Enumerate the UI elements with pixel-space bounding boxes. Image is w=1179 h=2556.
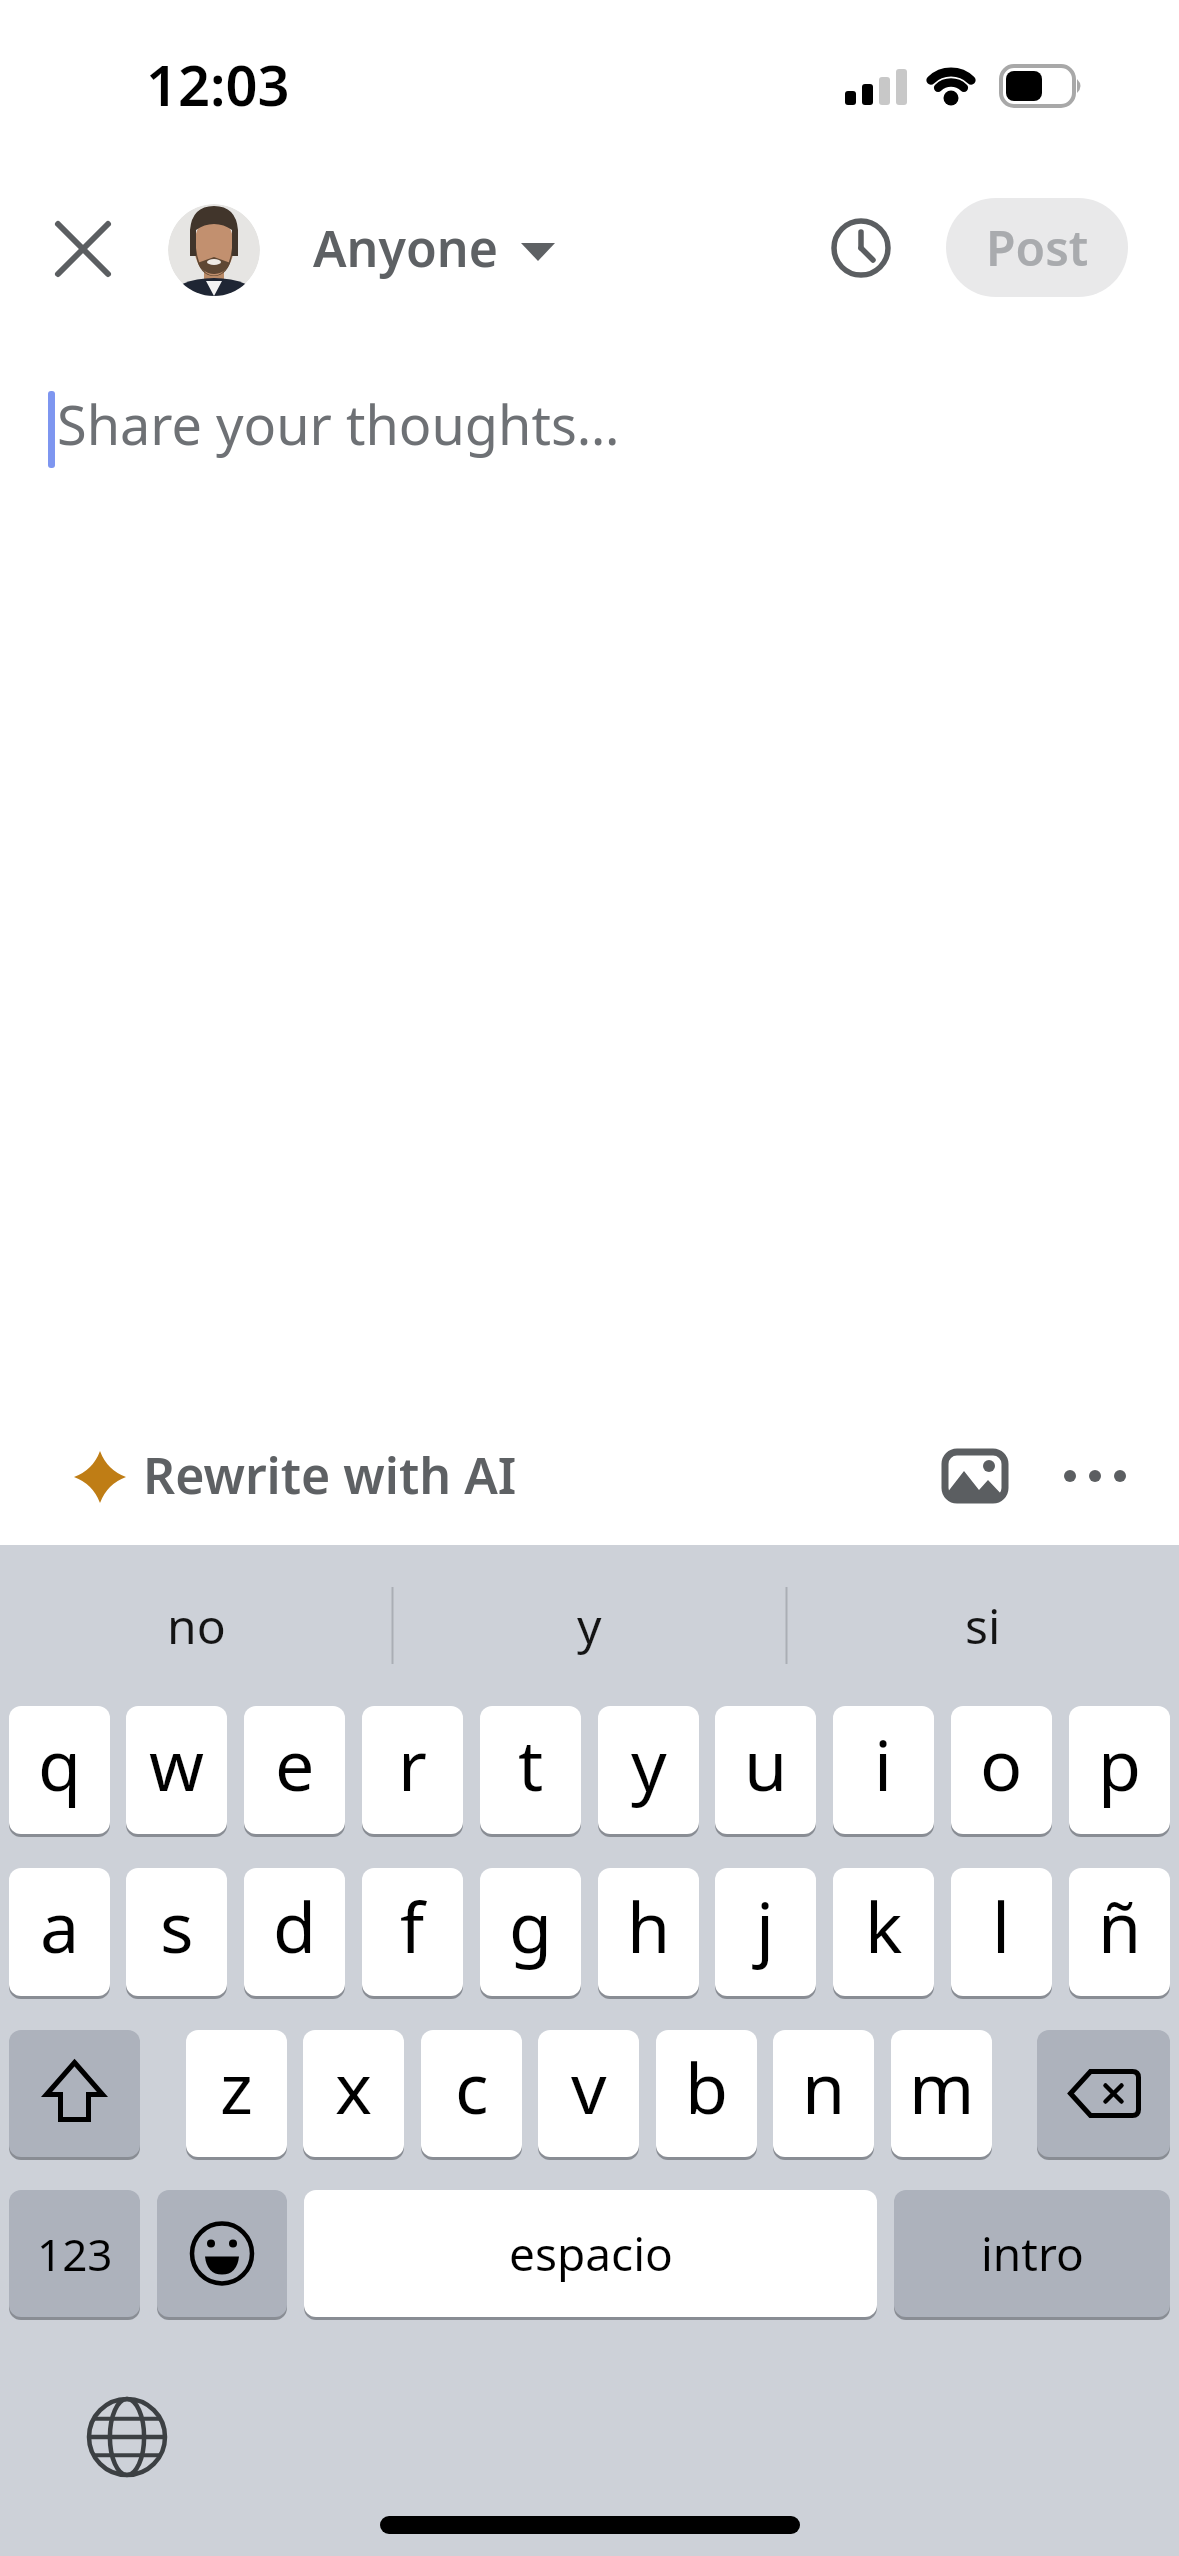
staticText: 123: [37, 2224, 113, 2284]
staticText: k: [865, 1878, 903, 1973]
staticText: t: [518, 1716, 544, 1811]
staticText: u: [744, 1716, 788, 1811]
button[interactable]: f: [362, 1868, 463, 1996]
staticText: w: [149, 1716, 205, 1811]
button[interactable]: y: [598, 1706, 699, 1834]
staticText: o: [980, 1716, 1023, 1811]
button[interactable]: [168, 204, 260, 296]
button[interactable]: Post: [946, 198, 1128, 297]
staticText: q: [38, 1716, 82, 1811]
staticText: no: [167, 1593, 226, 1658]
staticText: si: [965, 1593, 1001, 1658]
button[interactable]: u: [715, 1706, 816, 1834]
button[interactable]: no: [0, 1568, 392, 1683]
staticText: intro: [981, 2222, 1084, 2285]
button[interactable]: [935, 1442, 1015, 1510]
staticText: p: [1098, 1716, 1142, 1811]
button[interactable]: x: [303, 2030, 404, 2157]
button[interactable]: intro: [894, 2190, 1170, 2317]
staticText: Post: [986, 215, 1089, 280]
staticText: y: [577, 1593, 602, 1658]
button[interactable]: 123: [9, 2190, 140, 2317]
staticText: 12:03: [146, 46, 290, 122]
button[interactable]: [64, 1436, 524, 1516]
button[interactable]: y: [393, 1568, 785, 1683]
button[interactable]: v: [538, 2030, 639, 2157]
button[interactable]: [1037, 2030, 1170, 2157]
button[interactable]: l: [951, 1868, 1052, 1996]
button[interactable]: o: [951, 1706, 1052, 1834]
button[interactable]: m: [891, 2030, 992, 2157]
staticText: i: [874, 1716, 893, 1811]
staticText: h: [627, 1878, 671, 1973]
button[interactable]: b: [656, 2030, 757, 2157]
staticText: g: [509, 1878, 553, 1973]
staticText: m: [909, 2039, 975, 2134]
staticText: b: [685, 2039, 729, 2134]
button[interactable]: p: [1069, 1706, 1170, 1834]
staticText: z: [220, 2039, 253, 2134]
staticText: espacio: [509, 2222, 673, 2285]
staticText: Rewrite with AI: [143, 1441, 517, 1509]
button[interactable]: si: [786, 1568, 1179, 1683]
staticText: a: [40, 1878, 80, 1973]
button[interactable]: [157, 2190, 287, 2317]
staticText: s: [160, 1878, 194, 1973]
button[interactable]: [296, 205, 576, 295]
button[interactable]: z: [186, 2030, 287, 2157]
button[interactable]: espacio: [304, 2190, 877, 2317]
staticText: e: [275, 1716, 315, 1811]
staticText: f: [400, 1878, 425, 1973]
button[interactable]: [9, 2030, 140, 2157]
staticText: d: [273, 1878, 317, 1973]
button[interactable]: c: [421, 2030, 522, 2157]
button[interactable]: h: [598, 1868, 699, 1996]
button[interactable]: w: [126, 1706, 227, 1834]
button[interactable]: r: [362, 1706, 463, 1834]
button[interactable]: k: [833, 1868, 934, 1996]
staticText: ñ: [1098, 1878, 1142, 1973]
button[interactable]: [1050, 1448, 1136, 1504]
staticText: Anyone: [313, 214, 498, 282]
button[interactable]: n: [773, 2030, 874, 2157]
button[interactable]: s: [126, 1868, 227, 1996]
button[interactable]: q: [9, 1706, 110, 1834]
button[interactable]: g: [480, 1868, 581, 1996]
button[interactable]: j: [715, 1868, 816, 1996]
staticText: j: [756, 1878, 775, 1973]
staticText: v: [571, 2039, 607, 2134]
staticText: r: [398, 1716, 427, 1811]
staticText: c: [455, 2039, 489, 2134]
button[interactable]: [48, 214, 118, 284]
staticText: Share your thoughts…: [57, 387, 620, 461]
staticText: n: [802, 2039, 846, 2134]
button[interactable]: e: [244, 1706, 345, 1834]
button[interactable]: t: [480, 1706, 581, 1834]
button[interactable]: i: [833, 1706, 934, 1834]
button[interactable]: [85, 2395, 169, 2479]
button[interactable]: ñ: [1069, 1868, 1170, 1996]
button[interactable]: [826, 213, 896, 283]
staticText: l: [992, 1878, 1011, 1973]
button[interactable]: a: [9, 1868, 110, 1996]
button[interactable]: d: [244, 1868, 345, 1996]
staticText: x: [335, 2039, 373, 2134]
staticText: y: [631, 1716, 667, 1811]
